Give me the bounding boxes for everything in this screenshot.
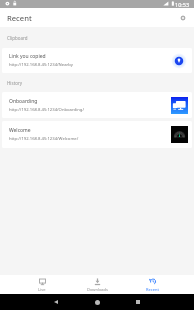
staticText: Recent — [7, 13, 32, 23]
button[interactable]: Back — [48, 294, 64, 310]
button[interactable]: Onboarding — [2, 92, 192, 118]
staticText: 10:53 — [175, 1, 190, 8]
staticText: http://192.168.8.45:1234/Welcome/ — [9, 136, 79, 142]
button[interactable]: Recent — [125, 275, 180, 294]
staticText: http://192.168.8.45:1234/Onboarding/ — [9, 107, 84, 113]
button[interactable]: Live — [14, 275, 70, 294]
button[interactable]: Settings — [172, 8, 194, 27]
staticText: Onboarding — [9, 98, 38, 105]
staticText: Clipboard — [7, 35, 28, 41]
staticText: Welcome — [9, 127, 31, 134]
staticText: Live — [38, 287, 46, 292]
button[interactable]: Home — [89, 294, 105, 310]
staticText: History — [7, 80, 23, 86]
button[interactable]: Welcome — [2, 121, 192, 148]
button[interactable]: Downloads — [70, 275, 125, 294]
staticText: Downloads — [87, 287, 108, 292]
staticText: Link you copied — [9, 53, 46, 60]
button[interactable]: Link you copied — [2, 48, 192, 73]
button[interactable]: Recents — [130, 294, 146, 310]
staticText: Recent — [146, 287, 159, 292]
staticText: http://192.168.8.45:1234/Nearby — [9, 62, 73, 68]
